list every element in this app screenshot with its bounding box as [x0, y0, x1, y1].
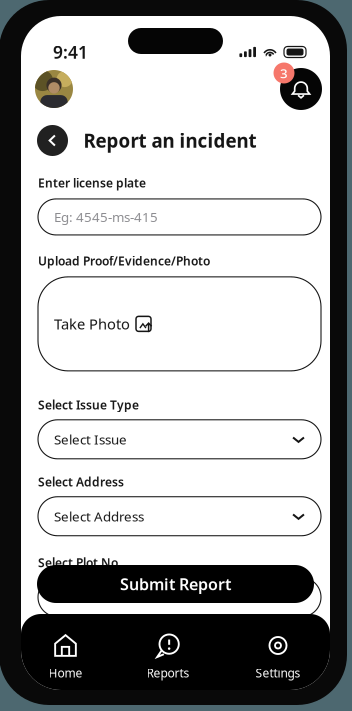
button[interactable]: Take Photo [38, 277, 321, 371]
button[interactable]: Settings [223, 634, 333, 681]
staticText: Take Photo [54, 314, 130, 334]
button[interactable]: Eg: 4545-ms-415 [38, 199, 321, 235]
staticText: Select Issue Type [38, 397, 139, 413]
staticText: Enter license plate [38, 175, 146, 191]
staticText: 9:41 [53, 40, 88, 63]
staticText: Select Plot [54, 588, 118, 606]
button[interactable]: Notifications [280, 68, 322, 110]
button[interactable]: Home [18, 634, 113, 681]
button[interactable]: Reports [113, 634, 223, 681]
staticText: Select Plot No [38, 555, 118, 571]
staticText: 3 [280, 64, 288, 82]
staticText: Submit Report [120, 573, 231, 595]
staticText: Select Address [38, 474, 124, 490]
staticText: Settings [255, 665, 300, 681]
button[interactable]: Submit Report [37, 565, 314, 603]
staticText: Reports [146, 665, 189, 681]
button[interactable]: Select Address [38, 497, 321, 536]
button[interactable]: Select Plot [38, 578, 321, 617]
button[interactable]: Profile [35, 70, 73, 108]
button[interactable]: Back [37, 125, 68, 156]
staticText: Home [48, 665, 82, 681]
staticText: Eg: 4545-ms-415 [54, 208, 158, 226]
staticText: Select Address [54, 507, 144, 525]
staticText: Report an incident [83, 128, 256, 153]
button[interactable]: Select Issue [38, 420, 321, 459]
staticText: Upload Proof/Evidence/Photo [38, 253, 210, 269]
staticText: Select Issue [54, 430, 127, 448]
